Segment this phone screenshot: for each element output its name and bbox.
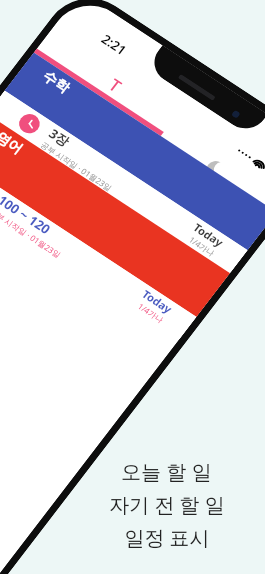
staticText: 일정 표시 <box>124 524 210 551</box>
staticText: 자기 전 할 일 <box>109 491 225 518</box>
staticText: Today <box>189 216 229 254</box>
button[interactable]: 영어 <box>0 78 240 375</box>
staticText: 공부 시작일 · 01월23일 <box>38 129 116 202</box>
staticText: 1/4가나 <box>135 297 168 329</box>
staticText: 2:21 <box>96 27 132 62</box>
button[interactable]: 수학 <box>0 17 265 308</box>
staticText: 영어 <box>0 125 28 162</box>
staticText: 100 ~ 120 <box>0 184 57 245</box>
button[interactable]: Night mode <box>197 152 234 187</box>
staticText: 오늘 할 일 <box>121 458 212 485</box>
staticText: Today <box>137 282 178 320</box>
staticText: 3장 <box>43 122 76 153</box>
staticText: 공부 시작일 · 01월23일 <box>0 195 65 269</box>
staticText: 1/4가나 <box>186 230 219 262</box>
staticText: 수학 <box>37 64 75 101</box>
staticText: T <box>102 72 129 98</box>
